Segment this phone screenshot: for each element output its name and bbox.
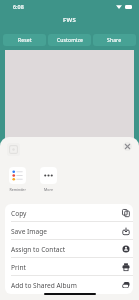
staticText: Customize bbox=[57, 37, 83, 44]
button[interactable]: Reset bbox=[3, 34, 46, 46]
button[interactable]: More bbox=[40, 167, 57, 192]
button[interactable]: Save Image bbox=[5, 222, 133, 240]
staticText: Assign to Contact bbox=[11, 245, 66, 254]
button[interactable]: Add to Shared Album bbox=[5, 276, 133, 294]
staticText: FWS bbox=[63, 16, 77, 24]
staticText: Copy bbox=[11, 209, 27, 218]
staticText: 6:08 bbox=[13, 3, 24, 10]
button[interactable]: Assign to Contact bbox=[5, 240, 133, 258]
staticText: Add to Shared Album bbox=[11, 281, 77, 290]
button[interactable]: Share bbox=[93, 34, 136, 46]
staticText: Share bbox=[107, 37, 122, 44]
staticText: Reminders bbox=[9, 187, 26, 192]
button[interactable]: Copy bbox=[5, 204, 133, 222]
button[interactable]: Reminders bbox=[9, 167, 26, 192]
staticText: Print bbox=[11, 263, 26, 272]
staticText: More bbox=[44, 187, 53, 192]
button[interactable]: Print bbox=[5, 258, 133, 276]
staticText: Reset bbox=[18, 37, 32, 44]
staticText: Save Image bbox=[11, 227, 47, 236]
button[interactable]: Customize bbox=[48, 34, 91, 46]
button[interactable]: Close bbox=[123, 142, 132, 151]
